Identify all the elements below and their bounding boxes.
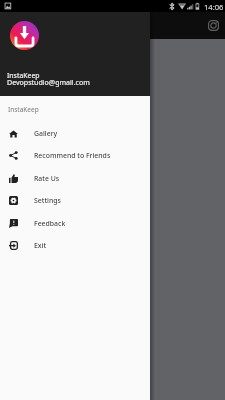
button[interactable]: Gallery [0,122,150,145]
staticText: Feedback [34,219,66,228]
button[interactable]: Settings [0,189,150,212]
staticText: Rate Us [34,174,60,183]
staticText: Settings [34,196,61,205]
staticText: InstaKeep [7,71,40,80]
button[interactable]: Rate Us [0,167,150,190]
button[interactable]: Exit [0,234,150,257]
button[interactable]: Instagram [200,12,225,38]
staticText: InstaKeep [8,105,39,114]
staticText: Gallery [34,129,58,138]
staticText: Devopstudio@gmail.com [7,77,90,87]
button[interactable]: Feedback [0,212,150,235]
staticText: 14:06 [204,2,224,12]
button[interactable]: Recommend to Friends [0,144,150,167]
staticText: Exit [34,241,47,250]
staticText: Recommend to Friends [34,151,111,160]
